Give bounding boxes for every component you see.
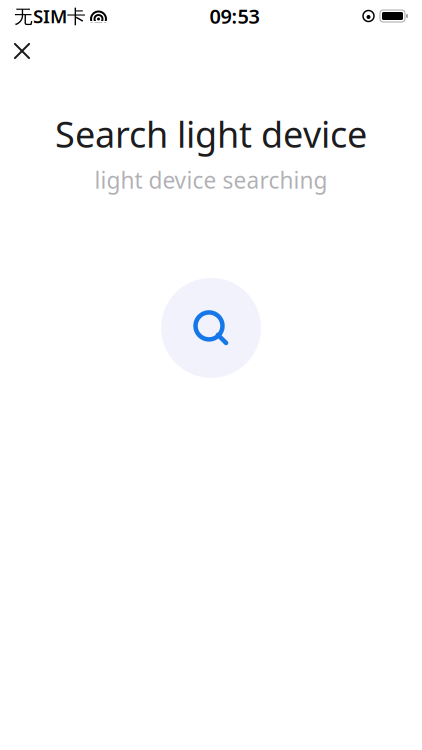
staticText: 无SIM卡 <box>14 4 86 28</box>
button[interactable]: Close <box>0 32 44 70</box>
staticText: 09:53 <box>209 3 259 29</box>
staticText: Search light device <box>55 110 367 158</box>
staticText: light device searching <box>94 165 327 195</box>
